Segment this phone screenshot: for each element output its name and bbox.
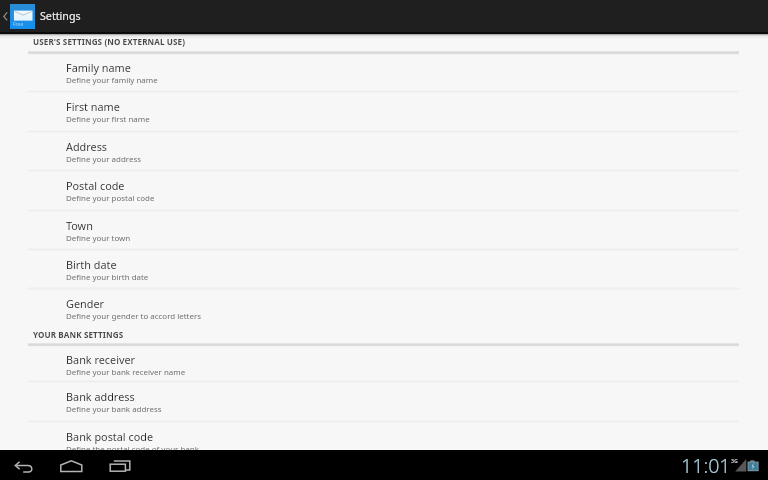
button[interactable]: Bank postal code [0,422,768,460]
button[interactable]: Home [48,450,96,480]
staticText: YOUR BANK SETTINGS [33,329,124,340]
staticText: First name [66,99,120,114]
staticText: Postal code [66,178,125,193]
staticText: Gender [66,296,104,311]
staticText: Define your first name [66,114,150,125]
button[interactable]: First name [0,92,768,130]
staticText: Define the postal code of your bank [66,444,199,455]
button[interactable]: Postal code [0,171,768,209]
button[interactable]: Gender [0,289,768,327]
staticText: Define your gender to accord letters [66,311,202,322]
staticText: Birth date [66,257,117,272]
staticText: Settings [40,9,81,24]
staticText: Define your bank receiver name [66,367,186,378]
staticText: Family name [66,60,131,75]
button[interactable]: Address [0,132,768,170]
staticText: Define your town [66,233,131,244]
button[interactable]: Bank receiver [0,345,768,383]
button[interactable]: Family name [0,53,768,91]
staticText: Bank address [66,389,135,404]
staticText: Define your birth date [66,272,149,283]
staticText: USER'S SETTINGS (NO EXTERNAL USE) [33,36,186,47]
staticText: Define your family name [66,75,158,86]
staticText: Bank receiver [66,352,136,367]
staticText: 3G [731,457,738,464]
button[interactable]: Birth date [0,250,768,288]
button[interactable]: System status: 11:01, 3G, battery chargi… [676,450,768,480]
staticText: 11:01 [681,452,731,479]
button[interactable]: Town [0,211,768,249]
staticText: Free [13,21,24,28]
staticText: Define your postal code [66,193,155,204]
button[interactable]: Recent apps [96,450,144,480]
staticText: Bank postal code [66,429,154,444]
button[interactable]: Navigate up [0,0,92,32]
staticText: Address [66,139,108,154]
staticText: Town [66,218,93,233]
button[interactable]: Back [0,450,48,480]
staticText: Define your address [66,154,142,165]
button[interactable]: Bank address [0,382,768,420]
staticText: Define your bank address [66,404,162,415]
